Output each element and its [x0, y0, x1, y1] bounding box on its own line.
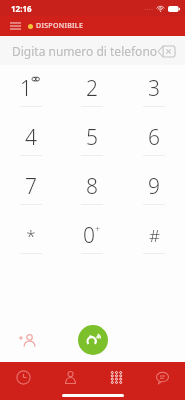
staticText: 9: [148, 172, 160, 201]
staticText: 5: [86, 123, 98, 152]
staticText: *: [26, 224, 36, 247]
staticText: 12:16: [11, 3, 32, 14]
button[interactable]: 4: [0, 116, 61, 165]
button[interactable]: Contacts: [47, 362, 93, 392]
staticText: 2: [86, 74, 98, 103]
button[interactable]: Keypad: [93, 362, 139, 392]
button[interactable]: 7: [0, 165, 61, 214]
button[interactable]: 2: [61, 67, 123, 116]
button[interactable]: Add contact: [14, 327, 40, 353]
staticText: 1: [20, 74, 32, 103]
button[interactable]: Recent calls: [0, 362, 47, 392]
button[interactable]: 1: [0, 67, 61, 116]
button[interactable]: 9: [123, 165, 185, 214]
button[interactable]: Digita numero di telefono: [0, 36, 185, 65]
button[interactable]: Menu: [6, 17, 24, 35]
staticText: 7: [25, 172, 37, 201]
staticText: #: [149, 224, 160, 247]
button[interactable]: Backspace: [154, 41, 178, 61]
staticText: Digita numero di telefono: [12, 43, 158, 59]
button[interactable]: 6: [123, 116, 185, 165]
staticText: 6: [148, 123, 160, 152]
staticText: DISPONIBILE: [36, 21, 84, 31]
button[interactable]: 3: [123, 67, 185, 116]
button[interactable]: #: [123, 214, 185, 263]
button[interactable]: Messages: [139, 362, 185, 392]
button[interactable]: DISPONIBILE: [26, 19, 86, 33]
button[interactable]: Call: [78, 325, 108, 355]
staticText: 4: [25, 123, 37, 152]
button[interactable]: 8: [61, 165, 123, 214]
staticText: 0: [83, 221, 95, 250]
staticText: 3: [148, 74, 160, 103]
button[interactable]: 0: [61, 214, 123, 263]
button[interactable]: 5: [61, 116, 123, 165]
button[interactable]: *: [0, 214, 61, 263]
staticText: 8: [86, 172, 98, 201]
staticText: +: [95, 222, 101, 234]
